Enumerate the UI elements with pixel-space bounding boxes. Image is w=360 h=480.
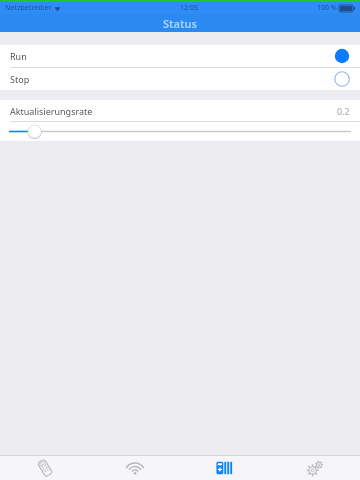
button[interactable] bbox=[0, 122, 360, 141]
staticText: 12:05 bbox=[180, 3, 198, 13]
button[interactable]: Settings bbox=[270, 455, 360, 480]
staticText: Netzbetreiber bbox=[5, 3, 52, 13]
staticText: Status bbox=[163, 16, 197, 31]
staticText: Aktualisierungsrate bbox=[10, 105, 93, 117]
button[interactable]: Remote bbox=[0, 455, 90, 480]
button[interactable]: Stop bbox=[0, 68, 360, 90]
button[interactable]: Run bbox=[0, 45, 360, 67]
staticText: 100 % bbox=[317, 3, 337, 13]
staticText: 0.2 bbox=[337, 105, 350, 117]
button[interactable]: Wi-Fi bbox=[90, 455, 180, 480]
staticText: Stop bbox=[10, 73, 30, 85]
button[interactable]: Status bbox=[180, 455, 270, 480]
staticText: Run bbox=[10, 50, 27, 62]
